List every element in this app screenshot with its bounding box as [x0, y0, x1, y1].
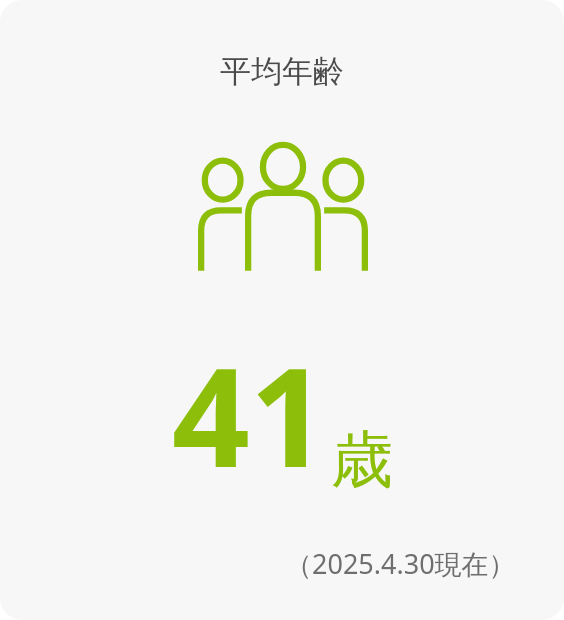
staticText: 41	[172, 322, 328, 507]
staticText: 歳	[331, 421, 393, 499]
staticText: 平均年齢	[220, 52, 344, 91]
other: People	[198, 148, 368, 274]
button[interactable]: 平均年齢	[0, 0, 564, 620]
staticText: （2025.4.30現在）	[285, 545, 516, 582]
